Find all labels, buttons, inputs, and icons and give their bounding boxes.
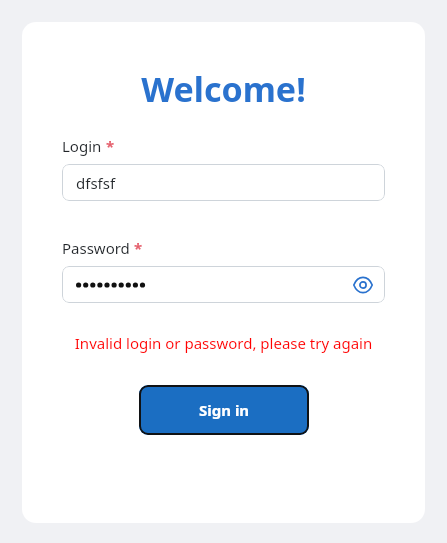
button[interactable] [76, 276, 341, 294]
staticText: * [134, 238, 143, 258]
button[interactable]: dfsfsf [62, 164, 385, 201]
staticText: Password [62, 238, 130, 258]
staticText: Login [62, 136, 102, 156]
staticText: dfsfsf [76, 173, 116, 193]
staticText: * [106, 136, 115, 156]
staticText: Welcome! [22, 66, 425, 112]
button[interactable]: Sign in [139, 385, 309, 435]
staticText: Invalid login or password, please try ag… [22, 333, 425, 353]
button[interactable]: Show password [341, 266, 385, 303]
staticText: Sign in [199, 400, 250, 420]
